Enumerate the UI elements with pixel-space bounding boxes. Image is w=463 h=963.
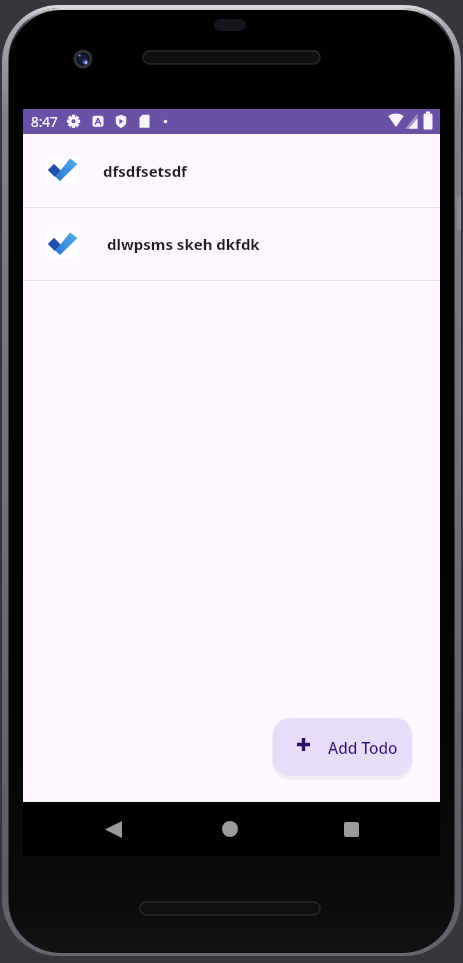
button[interactable]: Add Todo (273, 718, 412, 776)
staticText: 8:47 (31, 113, 58, 131)
staticText: Add Todo (328, 737, 398, 758)
staticText: dlwpsms skeh dkfdk (107, 234, 260, 254)
button[interactable] (206, 805, 254, 853)
button[interactable]: dlwpsms skeh dkfdk (23, 208, 440, 280)
staticText: dfsdfsetsdf (103, 161, 187, 181)
button[interactable] (327, 805, 375, 853)
button[interactable] (89, 805, 137, 853)
button[interactable]: dfsdfsetsdf (23, 134, 440, 207)
